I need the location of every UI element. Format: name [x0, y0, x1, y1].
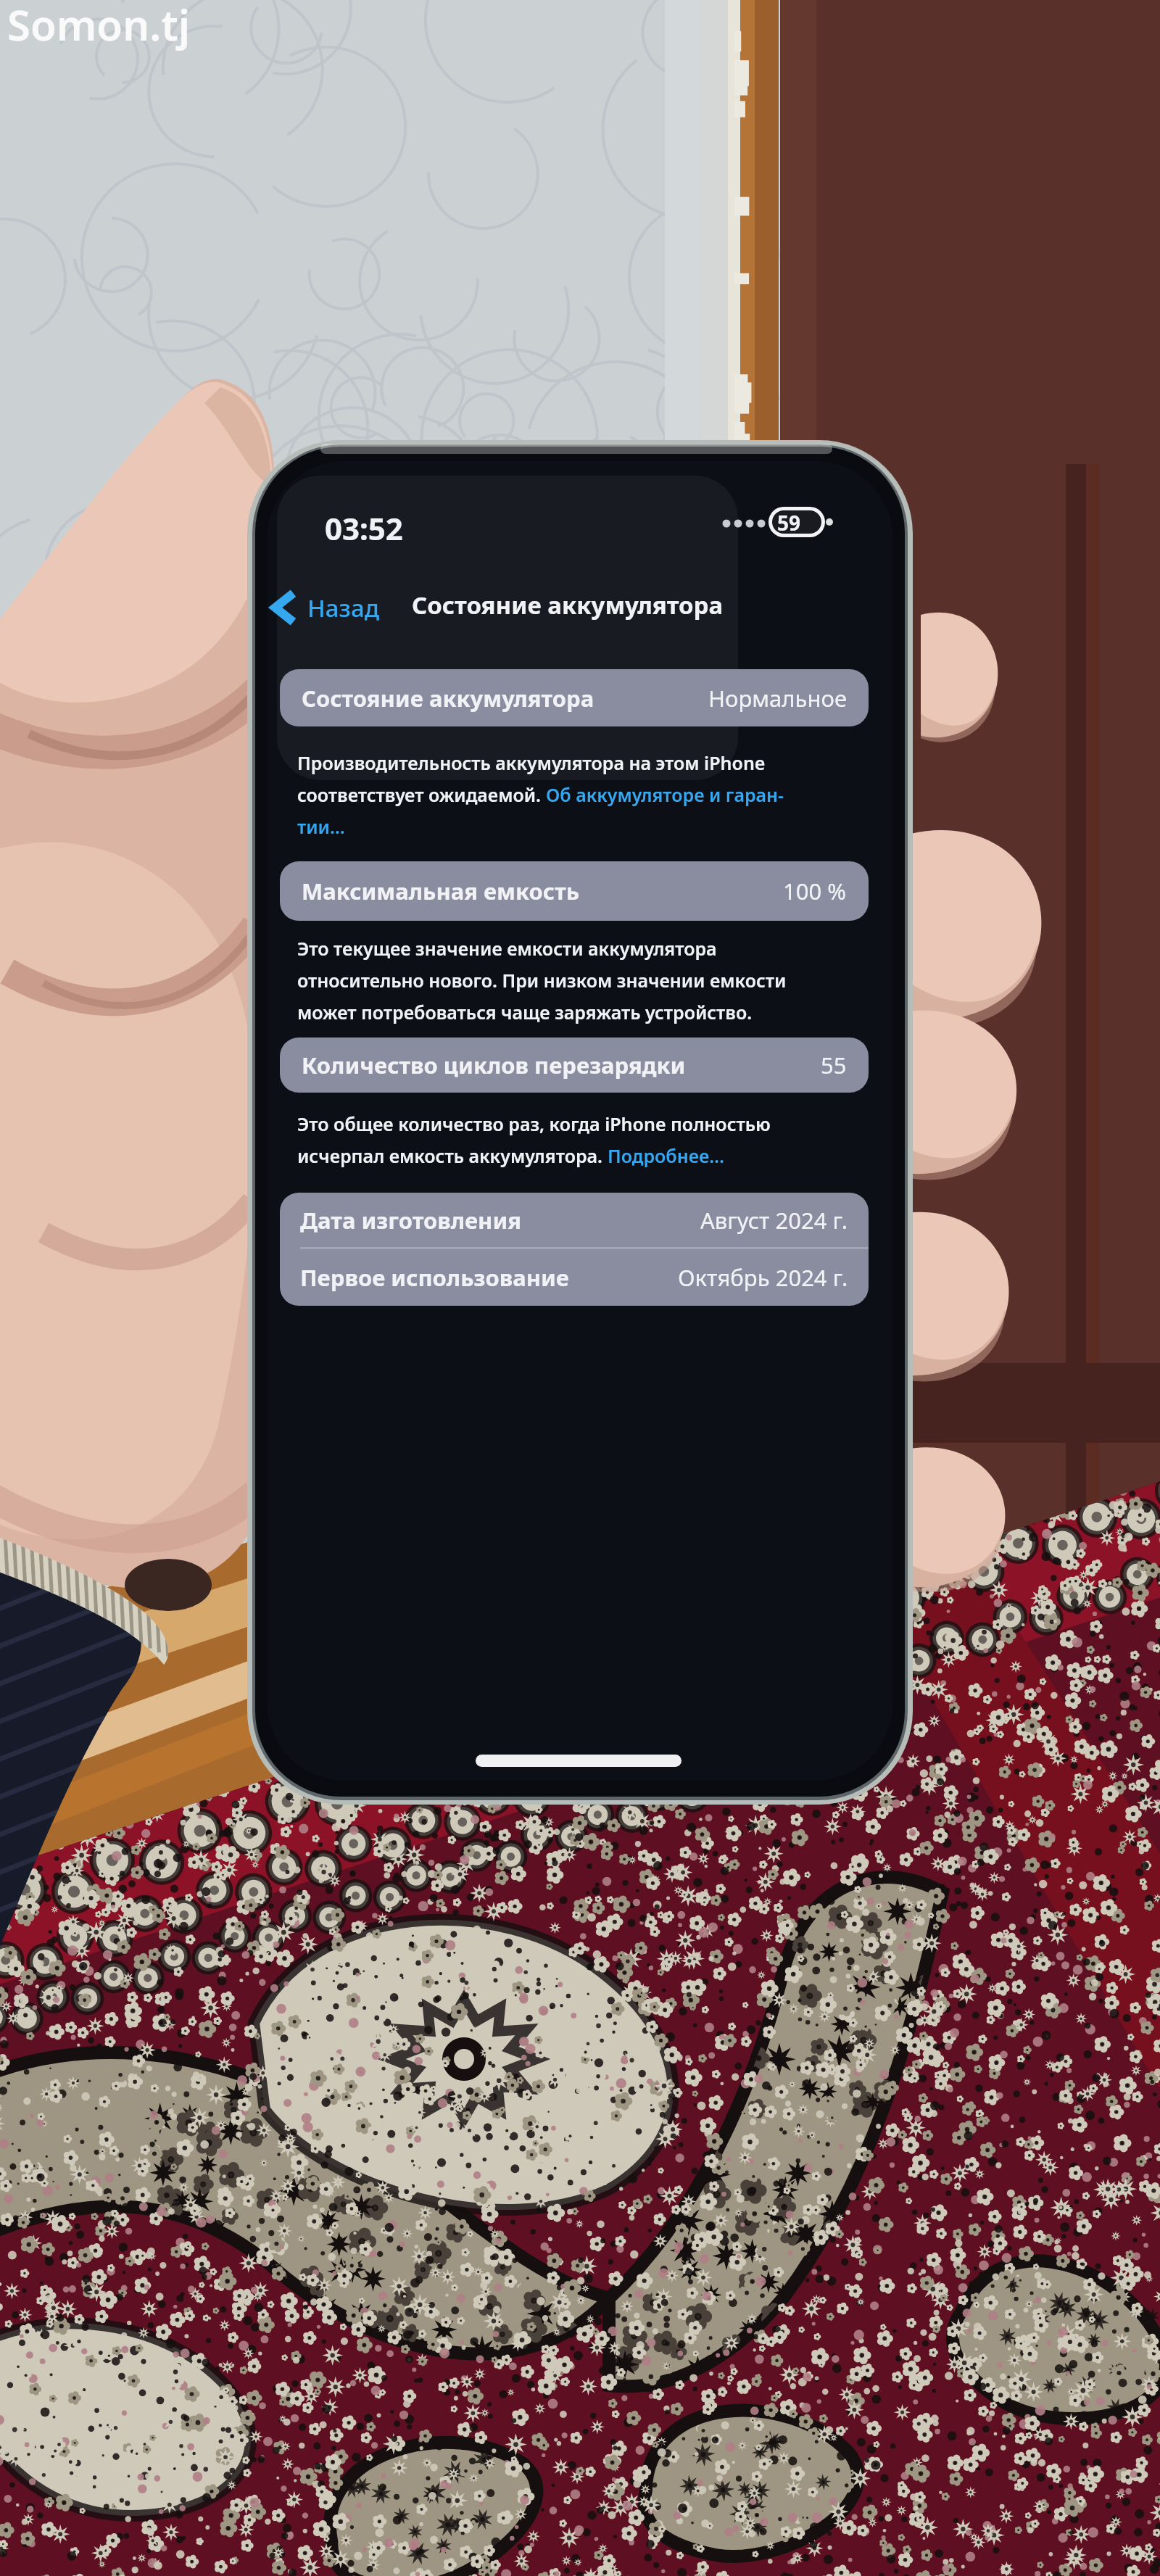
staticText: 100 % — [783, 876, 847, 906]
button[interactable]: Подробнее… — [608, 1143, 725, 1168]
staticText: относительно нового. При низком значении… — [297, 968, 787, 993]
staticText: Состояние аккумулятора — [412, 589, 724, 621]
staticText: может потребоваться чаще заряжать устрой… — [297, 1000, 753, 1024]
staticText: 03:52 — [325, 508, 403, 549]
staticText: Первое использование — [300, 1262, 569, 1293]
staticText: Нормальное — [708, 683, 847, 713]
button[interactable]: Назад — [265, 574, 379, 641]
staticText: Это текущее значение емкости аккумулятор… — [297, 936, 717, 961]
staticText: Дата изготовления — [300, 1205, 522, 1235]
staticText: Производительность аккумулятора на этом … — [297, 750, 766, 775]
button[interactable]: Количество циклов перезарядки — [280, 1038, 869, 1093]
staticText: Это общее количество раз, когда iPhone п… — [297, 1111, 771, 1136]
button[interactable]: Первое использование — [280, 1249, 869, 1306]
staticText: Максимальная емкость — [302, 876, 580, 906]
button[interactable]: Состояние аккумулятора — [280, 669, 869, 726]
staticText: Август 2024 г. — [700, 1205, 848, 1235]
staticText: соответствует ожидаемой. — [297, 782, 546, 807]
other: Home indicator — [476, 1755, 681, 1767]
staticText: Октябрь 2024 г. — [678, 1262, 848, 1293]
staticText: 55 — [821, 1050, 847, 1080]
button[interactable]: Об аккумуляторе и гаран- — [546, 782, 784, 807]
button[interactable]: тии… — [297, 814, 345, 839]
button[interactable]: Дата изготовления — [280, 1193, 869, 1247]
other: Battery 59 percent — [722, 503, 831, 544]
staticText: Состояние аккумулятора — [302, 683, 594, 713]
staticText: 59 — [777, 509, 801, 537]
staticText: Somon.tj — [7, 0, 191, 53]
button[interactable]: Максимальная емкость — [280, 861, 869, 921]
staticText: Количество циклов перезарядки — [302, 1050, 686, 1080]
staticText: исчерпал емкость аккумулятора. — [297, 1143, 608, 1168]
staticText: Назад — [307, 592, 379, 624]
